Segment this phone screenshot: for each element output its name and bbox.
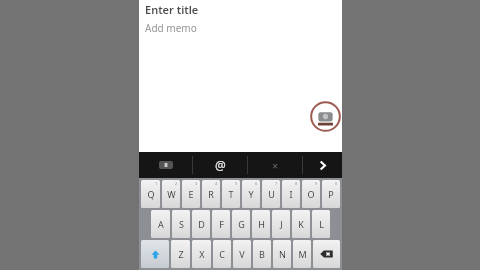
staticText: O xyxy=(307,188,315,200)
staticText: B xyxy=(259,248,265,260)
button[interactable]: K xyxy=(292,210,310,238)
button[interactable]: 9 xyxy=(302,180,320,208)
button[interactable]: C xyxy=(213,240,231,268)
button[interactable]: 1 xyxy=(141,180,160,208)
button[interactable]: F xyxy=(212,210,230,238)
button[interactable]: More suggestions xyxy=(303,152,342,178)
staticText: Y xyxy=(248,188,254,200)
staticText: Q xyxy=(147,188,155,200)
button[interactable]: 8 xyxy=(282,180,300,208)
button[interactable]: 6 xyxy=(242,180,260,208)
button[interactable]: 2 xyxy=(162,180,180,208)
button[interactable]: At sign xyxy=(193,152,247,178)
staticText: Enter title xyxy=(145,2,199,17)
staticText: H xyxy=(258,218,265,230)
button[interactable]: J xyxy=(272,210,290,238)
button[interactable]: 3 xyxy=(182,180,200,208)
staticText: Z xyxy=(178,248,184,260)
staticText: C xyxy=(219,248,225,260)
button[interactable]: 7 xyxy=(262,180,280,208)
button[interactable]: Emoji xyxy=(139,152,192,178)
staticText: N xyxy=(279,248,286,260)
staticText: M xyxy=(298,248,307,260)
staticText: 3 xyxy=(195,181,198,186)
staticText: 9 xyxy=(315,181,318,186)
staticText: I xyxy=(289,188,293,200)
button[interactable]: X xyxy=(192,240,211,268)
staticText: 5 xyxy=(235,181,238,186)
button[interactable]: S xyxy=(172,210,190,238)
staticText: S xyxy=(179,218,184,230)
staticText: Add memo xyxy=(145,21,197,35)
staticText: × xyxy=(272,158,279,173)
button[interactable]: G xyxy=(232,210,250,238)
staticText: W xyxy=(167,188,176,200)
button[interactable]: D xyxy=(192,210,210,238)
staticText: 1 xyxy=(155,181,158,186)
button[interactable]: Symbols xyxy=(248,152,302,178)
staticText: 0 xyxy=(335,181,338,186)
button[interactable]: Insert image xyxy=(310,101,341,132)
button[interactable]: L xyxy=(312,210,330,238)
button[interactable]: 0 xyxy=(322,180,340,208)
staticText: K xyxy=(298,218,304,230)
button[interactable]: 4 xyxy=(202,180,220,208)
staticText: 4 xyxy=(215,181,218,186)
staticText: J xyxy=(280,218,283,230)
staticText: 6 xyxy=(255,181,258,186)
staticText: X xyxy=(199,248,205,260)
staticText: R xyxy=(208,188,214,200)
button[interactable]: N xyxy=(273,240,291,268)
button[interactable]: A xyxy=(151,210,170,238)
staticText: L xyxy=(319,218,324,230)
staticText: A xyxy=(158,218,164,230)
staticText: T xyxy=(228,188,234,200)
button[interactable]: H xyxy=(252,210,270,238)
staticText: F xyxy=(219,218,224,230)
staticText: 2 xyxy=(175,181,178,186)
button[interactable]: Z xyxy=(171,240,190,268)
button[interactable]: Shift xyxy=(141,240,169,268)
staticText: V xyxy=(239,248,245,260)
button[interactable]: 5 xyxy=(222,180,240,208)
button[interactable]: Enter title xyxy=(145,2,342,17)
staticText: 7 xyxy=(275,181,278,186)
button[interactable]: M xyxy=(293,240,311,268)
staticText: U xyxy=(268,188,275,200)
button[interactable]: Backspace xyxy=(313,240,340,268)
staticText: 8 xyxy=(295,181,298,186)
button[interactable]: V xyxy=(233,240,251,268)
staticText: G xyxy=(238,218,245,230)
staticText: E xyxy=(188,188,194,200)
button[interactable]: B xyxy=(253,240,271,268)
staticText: @ xyxy=(215,157,226,173)
button[interactable]: Add memo xyxy=(145,21,342,35)
staticText: P xyxy=(328,188,334,200)
staticText: D xyxy=(198,218,205,230)
